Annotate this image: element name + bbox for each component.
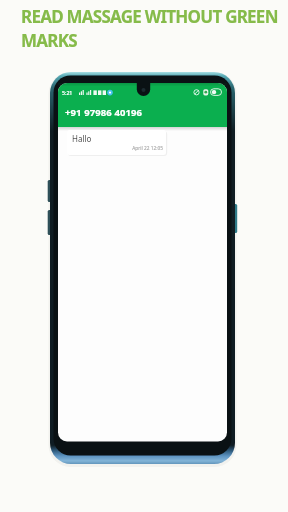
button[interactable]: Hallo <box>67 130 166 155</box>
staticText: April 22 12:05 <box>67 145 163 152</box>
staticText: 5:21 <box>62 89 73 96</box>
staticText: Hallo <box>72 133 92 144</box>
staticText: +91 97986 40196 <box>65 106 143 119</box>
staticText: READ MASSAGE WITHOUT GREEN MARKS <box>21 5 278 52</box>
